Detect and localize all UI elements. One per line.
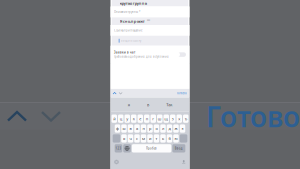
staticText: щ (164, 116, 168, 121)
staticText: ц (120, 116, 122, 121)
staticText: Описание группы * (114, 10, 140, 14)
button[interactable]: Previous field (0, 103, 34, 130)
staticText: в (129, 126, 131, 131)
button[interactable]: Готово (206, 98, 300, 135)
staticText: г (152, 116, 154, 121)
staticText: я (123, 136, 125, 141)
staticText: л (162, 126, 164, 131)
staticText: введите ссылку (121, 39, 141, 42)
staticText: х (178, 116, 180, 121)
staticText: Ввод (175, 147, 183, 150)
staticText: з (172, 116, 174, 121)
button[interactable]: Next field (34, 103, 68, 130)
staticText: ж (174, 126, 177, 131)
staticText: Так (166, 102, 172, 107)
staticText: ь (162, 136, 164, 141)
staticText: б (168, 136, 170, 141)
staticText: и (149, 136, 151, 141)
staticText: ч (129, 136, 131, 141)
staticText: Готово (177, 91, 187, 95)
staticText: Ясно-проект (120, 18, 145, 24)
staticText: й (113, 116, 115, 121)
staticText: н (146, 116, 148, 121)
staticText: е (139, 116, 141, 121)
staticText: я (128, 102, 130, 107)
staticText: м (142, 136, 145, 141)
staticText: р (149, 126, 151, 131)
staticText: у (126, 116, 128, 121)
staticText: т (155, 136, 157, 141)
staticText: требовать одобрения для вступления (114, 55, 169, 58)
staticText: с (136, 136, 138, 141)
staticText: ю (174, 136, 177, 141)
staticText: ы (122, 126, 125, 131)
staticText: *** (145, 19, 150, 23)
staticText: в (147, 102, 149, 107)
staticText: Ссылка-приглашение (114, 29, 142, 32)
staticText: о (155, 126, 157, 131)
staticText: 123 (115, 147, 121, 150)
staticText: ф (116, 126, 119, 131)
staticText: Готово (206, 98, 300, 135)
staticText: п (142, 126, 144, 131)
staticText: а (136, 126, 138, 131)
staticText: ш (158, 116, 162, 121)
staticText: д (168, 126, 170, 131)
staticText: э (181, 126, 183, 131)
staticText: Пробел (146, 147, 157, 150)
staticText: ъ (185, 116, 187, 121)
staticText: крутая группа (120, 1, 147, 6)
staticText: Заявки в чат (114, 51, 135, 54)
staticText: к (133, 116, 135, 121)
